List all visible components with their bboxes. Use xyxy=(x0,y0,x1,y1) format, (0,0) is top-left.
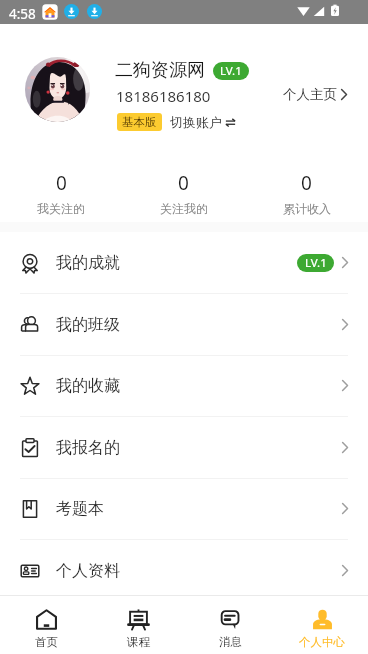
staticText: LV.1 xyxy=(220,63,242,79)
button[interactable]: 首页 xyxy=(0,596,92,654)
staticText: 我的班级 xyxy=(56,315,120,335)
staticText: 0 xyxy=(178,170,189,196)
staticText: 个人主页 xyxy=(283,86,337,103)
button[interactable]: 0 xyxy=(245,170,368,222)
staticText: 0 xyxy=(301,170,312,196)
button[interactable]: 课程 xyxy=(92,596,184,654)
button[interactable]: 我的班级 xyxy=(0,294,368,356)
staticText: 首页 xyxy=(35,635,58,649)
staticText: 我报名的 xyxy=(56,438,120,458)
button[interactable]: 个人中心 xyxy=(276,596,368,654)
staticText: LV.1 xyxy=(305,255,327,271)
staticText: 我的收藏 xyxy=(56,376,120,396)
staticText: 个人中心 xyxy=(299,635,345,649)
staticText: 我的成就 xyxy=(56,253,120,273)
button[interactable]: 个人主页 xyxy=(283,86,347,103)
button[interactable]: 我报名的 xyxy=(0,417,368,479)
staticText: 消息 xyxy=(219,635,242,649)
staticText: 基本版 xyxy=(122,115,157,129)
button[interactable]: 个人资料 xyxy=(0,540,368,602)
staticText: 二狗资源网 xyxy=(115,59,205,82)
button[interactable]: 我的收藏 xyxy=(0,355,368,417)
staticText: 4:58 xyxy=(9,5,36,23)
staticText: 课程 xyxy=(127,635,150,649)
staticText: 关注我的 xyxy=(160,201,208,216)
staticText: 累计收入 xyxy=(283,201,331,216)
button[interactable]: 基本版 xyxy=(117,113,162,131)
staticText: 18186186180 xyxy=(116,86,211,106)
staticText: 我关注的 xyxy=(37,201,85,216)
staticText: 考题本 xyxy=(56,499,104,519)
staticText: 切换账户 xyxy=(170,114,222,130)
button[interactable]: 切换账户 xyxy=(170,114,236,130)
button[interactable]: 0 xyxy=(0,170,122,222)
staticText: 个人资料 xyxy=(56,561,120,581)
button[interactable]: 0 xyxy=(122,170,245,222)
staticText: 0 xyxy=(56,170,67,196)
button[interactable]: 消息 xyxy=(184,596,276,654)
button[interactable]: 考题本 xyxy=(0,478,368,540)
button[interactable]: 我的成就 xyxy=(0,232,368,294)
